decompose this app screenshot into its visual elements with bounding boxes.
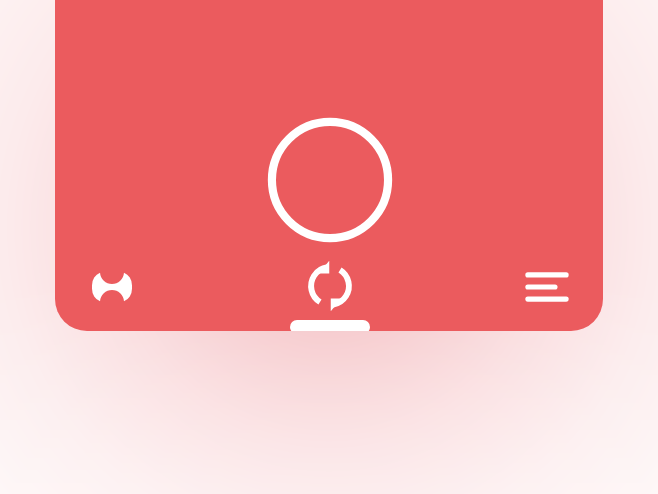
button[interactable]: Menu — [516, 256, 578, 318]
button[interactable]: Take photo — [264, 114, 396, 246]
button[interactable]: Switch camera — [299, 255, 361, 317]
button[interactable]: Controller — [81, 256, 143, 318]
